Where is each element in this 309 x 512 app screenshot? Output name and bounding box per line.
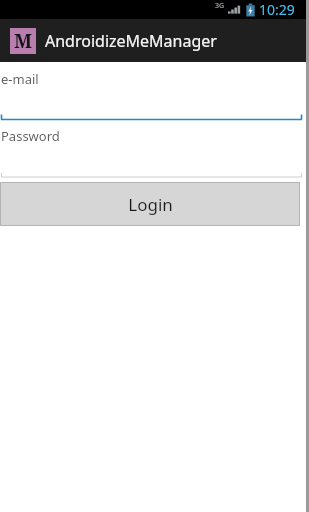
button[interactable]: Login [0,182,300,226]
staticText: Login [128,193,173,216]
staticText: M [14,28,33,54]
staticText: AndroidizeMeManager [45,30,217,52]
staticText: 10:29 [259,0,295,19]
button[interactable]: Password [0,121,309,179]
button[interactable]: e-mail [0,68,309,121]
staticText: Password [1,127,60,145]
staticText: 3G [215,1,225,11]
staticText: e-mail [1,70,39,88]
